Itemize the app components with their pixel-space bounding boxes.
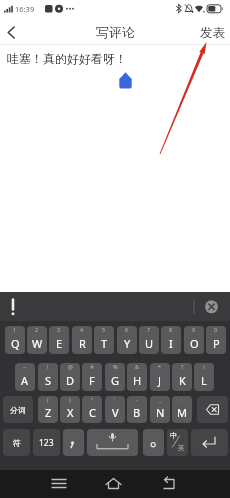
button[interactable]: _ [150,396,170,423]
button[interactable]: : [172,396,192,423]
button[interactable]: ! [38,363,58,391]
button[interactable]: 2 [27,326,47,354]
staticText: 5 [102,326,106,333]
button[interactable]: 9 [184,326,204,354]
staticText: O [190,336,199,351]
staticText: 123 [39,437,54,449]
button[interactable]: 0 [206,326,226,354]
button[interactable]: # [82,363,102,391]
staticText: U [145,336,154,351]
staticText: 7 [147,326,151,333]
staticText: X [67,405,74,420]
staticText: * [158,363,162,370]
staticText: 发表 [200,25,225,41]
button[interactable]: 3 [49,326,69,354]
staticText: K [179,373,186,388]
staticText: M [177,405,187,420]
button[interactable]: / [194,363,214,391]
button[interactable] [99,470,129,498]
staticText: D [66,373,75,388]
button[interactable]: & [127,363,147,391]
button[interactable] [154,470,184,498]
staticText: 6 [125,326,129,333]
button[interactable]: ) [60,396,80,423]
button[interactable]: ' [105,396,125,423]
button[interactable]: ~ [15,363,35,391]
staticText: ? [181,363,184,370]
staticText: W [32,336,43,351]
button[interactable] [0,20,26,44]
button[interactable]: * [150,363,170,391]
button[interactable]: 发表 [196,20,228,44]
staticText: 4 [80,326,84,333]
button[interactable]: 5 [94,326,114,354]
button[interactable] [44,470,74,498]
button[interactable]: @ [60,363,80,391]
button[interactable]: - [127,396,147,423]
staticText: ~ [23,363,27,370]
staticText: C [89,405,96,420]
button[interactable]: 8 [161,326,181,354]
staticText: R [79,336,86,351]
staticText: T [101,336,108,351]
button[interactable]: 6 [117,326,137,354]
staticText: 3 [57,326,61,333]
button[interactable] [143,429,164,456]
staticText: 1 [13,326,17,333]
staticText: F [89,373,95,388]
button[interactable] [167,429,188,456]
button[interactable]: 1 [5,326,25,354]
staticText: H [133,373,142,388]
staticText: 2 [35,326,39,333]
staticText: 英 [178,444,185,452]
staticText: " [91,396,94,403]
staticText: N [156,405,165,420]
staticText: G [111,373,120,388]
button[interactable] [0,292,230,321]
staticText: 8 [169,326,173,333]
staticText: E [56,336,63,351]
staticText: L [201,373,207,388]
button[interactable] [63,429,84,456]
staticText: & [135,363,140,370]
button[interactable]: " [82,396,102,423]
button[interactable]: % [105,363,125,391]
staticText: J [158,373,162,388]
staticText: P [213,336,220,351]
staticText: 中 [170,431,177,440]
staticText: 符 [13,438,21,448]
staticText: - [136,396,138,403]
staticText: % [113,363,118,370]
staticText: 分词 [10,405,26,415]
button[interactable]: 4 [72,326,92,354]
staticText: V [112,405,119,420]
staticText: Y [124,336,131,351]
button[interactable]: 符 [3,429,30,456]
staticText: 写评论 [96,24,135,40]
staticText: 哇塞！真的好好看呀！ [7,51,127,66]
staticText: _ [159,396,162,403]
button[interactable] [87,429,138,456]
staticText: Q [11,336,20,351]
staticText: ( [47,396,49,403]
staticText: ! [47,363,49,370]
button[interactable] [191,429,228,456]
staticText: A [21,373,29,388]
button[interactable] [197,396,228,423]
staticText: @ [68,363,73,370]
button[interactable]: 123 [33,429,60,456]
staticText: I [169,336,173,351]
button[interactable]: ? [172,363,192,391]
staticText: 16:39 [15,4,35,14]
staticText: B [133,405,141,420]
button[interactable]: 分词 [3,396,33,423]
button[interactable]: 7 [139,326,159,354]
staticText: S [45,373,52,388]
staticText: 9 [192,326,196,333]
staticText: ) [69,396,71,403]
staticText: 0 [214,326,218,333]
staticText: Z [45,405,52,420]
staticText: : [181,396,183,403]
staticText: ' [114,396,116,403]
button[interactable]: ( [38,396,58,423]
